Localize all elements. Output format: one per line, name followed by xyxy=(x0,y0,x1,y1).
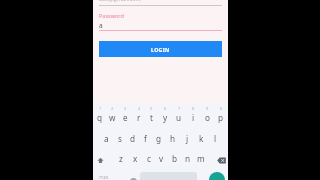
staticText: 2 xyxy=(111,106,114,111)
staticText: b xyxy=(172,153,178,164)
button[interactable]: n xyxy=(181,149,194,167)
button[interactable]: 6 xyxy=(158,106,172,130)
staticText: v xyxy=(159,153,164,164)
button[interactable]: c xyxy=(142,149,155,167)
button[interactable]: 7 xyxy=(172,106,186,130)
staticText: u xyxy=(176,112,182,123)
staticText: 1 xyxy=(99,106,102,111)
staticText: f xyxy=(144,133,147,144)
staticText: a xyxy=(104,133,109,144)
button[interactable]: 4 xyxy=(132,106,145,130)
button[interactable]: 0 xyxy=(214,106,228,130)
button[interactable]: d xyxy=(126,129,139,147)
staticText: g xyxy=(156,133,162,144)
button[interactable]: 2 xyxy=(106,106,119,130)
staticText: e xyxy=(123,112,128,123)
button[interactable]: m xyxy=(194,149,207,167)
button[interactable]: v xyxy=(155,149,168,167)
staticText: abc@gmail.com xyxy=(99,0,141,3)
staticText: ?123 xyxy=(99,175,109,180)
staticText: 0 xyxy=(220,106,223,111)
button[interactable]: z xyxy=(114,149,128,167)
staticText: y xyxy=(163,112,168,123)
staticText: j xyxy=(186,133,189,144)
staticText: 9 xyxy=(206,106,209,111)
staticText: 4 xyxy=(138,106,141,111)
staticText: 3 xyxy=(124,106,127,111)
button[interactable]: 1 xyxy=(93,106,106,130)
button[interactable]: a xyxy=(100,129,113,147)
button[interactable]: 5 xyxy=(145,106,158,130)
button[interactable]: l xyxy=(208,129,222,147)
staticText: a xyxy=(99,21,103,30)
button[interactable]: Emoji xyxy=(129,177,137,180)
staticText: 5 xyxy=(150,106,153,111)
staticText: m xyxy=(197,153,205,164)
button[interactable]: ?123 xyxy=(94,175,114,180)
staticText: l xyxy=(214,133,217,144)
staticText: w xyxy=(109,112,116,123)
button[interactable]: Backspace xyxy=(214,149,228,167)
staticText: 6 xyxy=(164,106,167,111)
button[interactable]: s xyxy=(113,129,126,147)
button[interactable]: k xyxy=(194,129,208,147)
button[interactable]: h xyxy=(166,129,180,147)
staticText: 8 xyxy=(192,106,195,111)
staticText: o xyxy=(205,112,210,123)
staticText: Password xyxy=(99,12,124,19)
staticText: h xyxy=(170,133,176,144)
staticText: d xyxy=(130,133,136,144)
button[interactable]: 3 xyxy=(119,106,132,130)
staticText: p xyxy=(218,112,224,123)
button[interactable]: Enter xyxy=(209,172,225,180)
button[interactable]: 8 xyxy=(186,106,200,130)
staticText: 7 xyxy=(178,106,181,111)
staticText: n xyxy=(185,153,191,164)
staticText: i xyxy=(192,112,195,123)
staticText: z xyxy=(119,153,123,164)
button[interactable]: j xyxy=(180,129,194,147)
button[interactable]: LOGIN xyxy=(99,41,222,57)
staticText: q xyxy=(97,112,103,123)
staticText: r xyxy=(137,112,141,123)
staticText: LOGIN xyxy=(151,46,170,53)
staticText: t xyxy=(150,112,153,123)
staticText: c xyxy=(147,153,151,164)
staticText: x xyxy=(133,153,138,164)
button[interactable]: Shift xyxy=(93,149,107,167)
button[interactable]: g xyxy=(152,129,166,147)
staticText: k xyxy=(199,133,204,144)
button[interactable]: b xyxy=(168,149,181,167)
button[interactable]: 9 xyxy=(200,106,214,130)
button[interactable]: x xyxy=(128,149,142,167)
button[interactable]: f xyxy=(139,129,152,147)
staticText: s xyxy=(118,133,122,144)
